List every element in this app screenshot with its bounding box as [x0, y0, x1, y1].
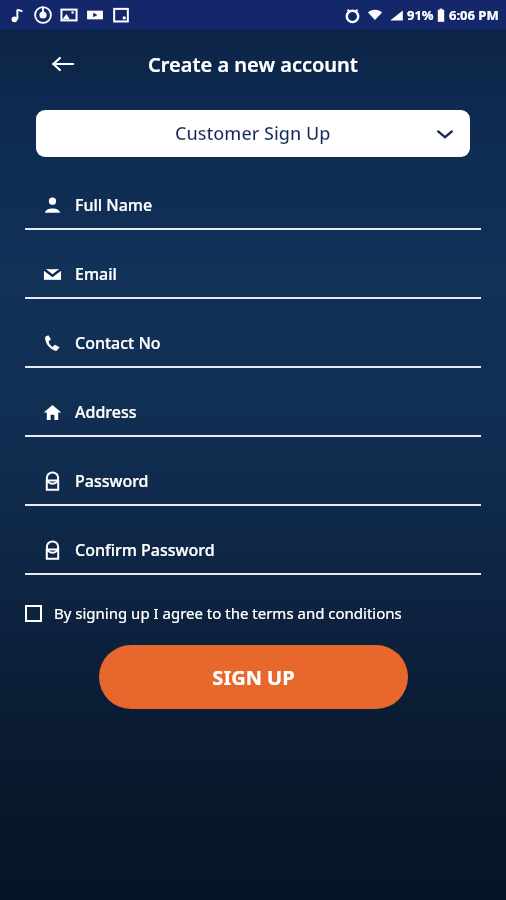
- staticText: Contact No: [75, 332, 161, 354]
- button[interactable]: Password: [25, 458, 481, 527]
- staticText: Full Name: [75, 194, 153, 216]
- button[interactable]: Back: [44, 45, 82, 83]
- button[interactable]: Email: [25, 251, 481, 320]
- staticText: 6:06 PM: [449, 6, 499, 24]
- staticText: SIGN UP: [212, 664, 295, 691]
- staticText: Create a new account: [148, 51, 358, 78]
- staticText: 91%: [407, 6, 434, 24]
- button[interactable]: SIGN UP: [99, 645, 408, 709]
- staticText: By signing up I agree to the terms and c…: [54, 603, 402, 623]
- button[interactable]: Full Name: [25, 182, 481, 251]
- button[interactable]: Confirm Password: [25, 527, 481, 596]
- button[interactable]: Customer Sign Up: [36, 110, 470, 157]
- button[interactable]: Address: [25, 389, 481, 458]
- staticText: Email: [75, 263, 117, 285]
- staticText: Confirm Password: [75, 539, 215, 561]
- button[interactable]: By signing up I agree to the terms and c…: [25, 603, 506, 623]
- button[interactable]: Contact No: [25, 320, 481, 389]
- staticText: Customer Sign Up: [175, 121, 331, 146]
- staticText: Password: [75, 470, 149, 492]
- staticText: Address: [75, 401, 137, 423]
